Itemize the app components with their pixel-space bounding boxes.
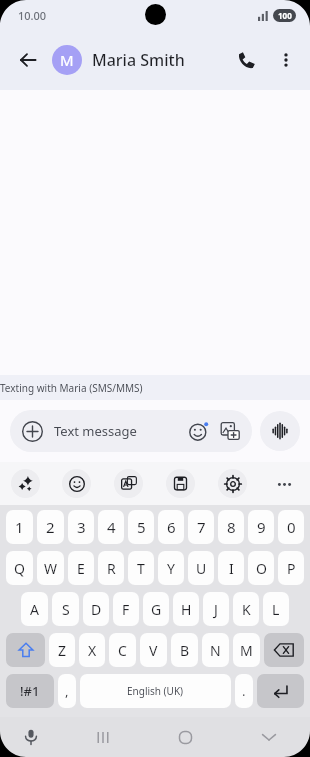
staticText: E <box>77 559 85 578</box>
staticText: W <box>44 559 58 578</box>
staticText: 3 <box>77 517 86 537</box>
button[interactable]: Attach <box>10 410 252 452</box>
button[interactable]: Hide keyboard <box>227 717 310 757</box>
button[interactable]: Home <box>144 717 227 757</box>
button[interactable]: C <box>109 633 136 667</box>
button[interactable]: 7 <box>188 510 214 544</box>
staticText: M <box>60 50 74 70</box>
staticText: X <box>88 641 97 660</box>
staticText: U <box>196 559 207 578</box>
button[interactable]: 3 <box>68 510 94 544</box>
staticText: 4 <box>107 517 116 537</box>
button[interactable]: A <box>21 592 48 626</box>
button[interactable]: R <box>98 551 124 585</box>
button[interactable]: 2 <box>37 510 64 544</box>
button[interactable]: , <box>58 674 76 708</box>
button[interactable]: Y <box>158 551 184 585</box>
button[interactable]: Emoji <box>185 417 213 445</box>
button[interactable]: Call <box>226 40 266 80</box>
staticText: 10.00 <box>18 8 47 23</box>
button[interactable]: Recents <box>62 717 144 757</box>
button[interactable]: M <box>233 633 260 667</box>
button[interactable]: J <box>203 592 229 626</box>
button[interactable]: W <box>37 551 64 585</box>
button[interactable]: Attach image <box>216 417 244 445</box>
button[interactable]: Q <box>6 551 33 585</box>
staticText: V <box>149 641 158 660</box>
button[interactable]: Clipboard <box>166 469 195 498</box>
button[interactable]: English (UK) <box>80 674 231 708</box>
staticText: H <box>181 600 192 619</box>
button[interactable]: . <box>235 674 253 708</box>
button[interactable]: Shift <box>6 633 45 667</box>
button[interactable]: M <box>52 45 82 75</box>
button[interactable]: T <box>128 551 154 585</box>
staticText: 0 <box>287 517 296 537</box>
staticText: 7 <box>197 517 206 537</box>
staticText: F <box>122 600 130 619</box>
button[interactable]: Back <box>8 40 48 80</box>
button[interactable]: U <box>188 551 214 585</box>
staticText: Text message <box>54 422 185 440</box>
staticText: A <box>30 600 39 619</box>
button[interactable]: Record audio <box>260 411 300 451</box>
button[interactable]: 9 <box>248 510 274 544</box>
staticText: 100 <box>278 10 292 21</box>
button[interactable]: K <box>233 592 259 626</box>
staticText: 9 <box>257 517 266 537</box>
staticText: I <box>229 559 234 578</box>
staticText: , <box>65 682 69 700</box>
staticText: 2 <box>46 517 55 537</box>
button[interactable]: 1 <box>6 510 33 544</box>
button[interactable]: Attach <box>19 418 45 444</box>
button[interactable]: B <box>171 633 198 667</box>
staticText: 1 <box>15 517 24 537</box>
button[interactable]: Settings <box>218 469 247 498</box>
staticText: N <box>210 641 221 660</box>
button[interactable]: Enter <box>257 674 304 708</box>
button[interactable]: Magic <box>11 469 40 498</box>
button[interactable]: Z <box>49 633 75 667</box>
button[interactable]: H <box>173 592 199 626</box>
staticText: B <box>180 641 190 660</box>
button[interactable]: Backspace <box>264 633 304 667</box>
staticText: English (UK) <box>127 684 184 698</box>
button[interactable]: F <box>113 592 139 626</box>
button[interactable]: I <box>218 551 244 585</box>
staticText: !#1 <box>20 682 40 700</box>
staticText: 5 <box>137 517 146 537</box>
button[interactable]: E <box>68 551 94 585</box>
button[interactable]: D <box>83 592 109 626</box>
staticText: 8 <box>227 517 236 537</box>
button[interactable]: P <box>278 551 304 585</box>
button[interactable]: More <box>270 470 298 498</box>
button[interactable]: O <box>248 551 274 585</box>
button[interactable]: 0 <box>278 510 304 544</box>
button[interactable]: Stickers <box>62 469 91 498</box>
staticText: M <box>240 641 253 660</box>
button[interactable]: S <box>52 592 79 626</box>
staticText: Z <box>58 641 67 660</box>
button[interactable]: !#1 <box>6 674 54 708</box>
staticText: P <box>287 559 296 578</box>
button[interactable]: L <box>263 592 289 626</box>
staticText: J <box>214 600 218 619</box>
button[interactable]: 6 <box>158 510 184 544</box>
button[interactable]: G <box>143 592 169 626</box>
button[interactable]: X <box>79 633 105 667</box>
staticText: 6 <box>167 517 176 537</box>
staticText: Y <box>167 559 175 578</box>
staticText: . <box>242 682 246 700</box>
button[interactable]: More options <box>266 40 306 80</box>
button[interactable]: 4 <box>98 510 124 544</box>
staticText: L <box>272 600 280 619</box>
button[interactable]: 8 <box>218 510 244 544</box>
button[interactable]: V <box>140 633 167 667</box>
button[interactable]: 5 <box>128 510 154 544</box>
staticText: D <box>91 600 102 619</box>
button[interactable]: Translate <box>114 469 143 498</box>
button[interactable]: N <box>202 633 229 667</box>
staticText: Maria Smith <box>92 49 226 71</box>
button[interactable]: Voice input <box>0 717 62 757</box>
staticText: T <box>137 559 145 578</box>
